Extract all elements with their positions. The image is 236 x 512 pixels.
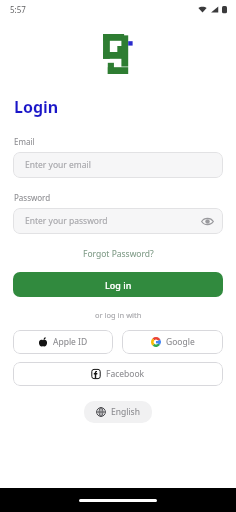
button[interactable]: Google xyxy=(122,330,223,354)
staticText: Log in xyxy=(105,279,132,291)
staticText: Email xyxy=(14,136,35,147)
button[interactable]: Forgot Password? xyxy=(79,246,158,262)
staticText: Facebook xyxy=(106,368,145,380)
staticText: Google xyxy=(166,336,195,348)
button[interactable]: Enter your email xyxy=(13,152,223,178)
staticText: English xyxy=(111,406,140,418)
staticText: 5:57 xyxy=(10,4,26,15)
staticText: Enter your email xyxy=(25,159,91,171)
button[interactable]: Log in xyxy=(13,272,223,297)
staticText: Enter your password xyxy=(25,215,108,227)
button[interactable]: English xyxy=(84,401,152,423)
staticText: or log in with xyxy=(95,310,142,320)
staticText: Password xyxy=(14,192,51,203)
button[interactable]: Enter your password xyxy=(13,208,223,234)
staticText: Login xyxy=(14,96,59,118)
button[interactable]: Facebook xyxy=(13,362,223,386)
button[interactable]: Show password xyxy=(200,214,214,228)
staticText: Apple ID xyxy=(53,336,88,348)
button[interactable]: Apple ID xyxy=(13,330,113,354)
staticText: Forgot Password? xyxy=(83,248,154,260)
